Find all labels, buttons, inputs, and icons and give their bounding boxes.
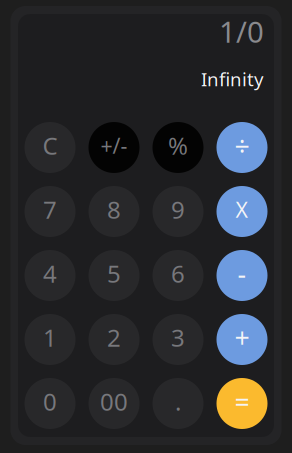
- staticText: 3: [171, 322, 185, 353]
- button[interactable]: Eight: [88, 186, 139, 237]
- button[interactable]: One: [24, 314, 75, 365]
- staticText: -: [237, 256, 246, 291]
- staticText: X: [235, 195, 248, 224]
- staticText: +/-: [100, 131, 127, 160]
- staticText: ÷: [234, 128, 249, 163]
- staticText: 4: [43, 258, 57, 289]
- button[interactable]: Seven: [24, 186, 75, 237]
- button[interactable]: Three: [152, 314, 203, 365]
- staticText: %: [168, 130, 188, 161]
- button[interactable]: Five: [88, 250, 139, 301]
- staticText: 7: [43, 194, 57, 225]
- button[interactable]: Nine: [152, 186, 203, 237]
- staticText: 8: [107, 194, 121, 225]
- button[interactable]: Zero: [24, 378, 75, 429]
- button[interactable]: Plus: [216, 314, 267, 365]
- button[interactable]: Percent: [152, 122, 203, 173]
- staticText: Infinity: [201, 67, 264, 91]
- button[interactable]: Toggle sign: [88, 122, 139, 173]
- button[interactable]: Equals: [216, 378, 267, 429]
- button[interactable]: Decimal point: [152, 378, 203, 429]
- button[interactable]: Double zero: [88, 378, 139, 429]
- button[interactable]: Divide: [216, 122, 267, 173]
- button[interactable]: Multiply: [216, 186, 267, 237]
- staticText: 6: [171, 258, 185, 289]
- staticText: 5: [107, 258, 121, 289]
- staticText: 2: [107, 322, 121, 353]
- staticText: 9: [171, 194, 185, 225]
- staticText: =: [234, 384, 249, 419]
- staticText: 0: [43, 386, 57, 417]
- staticText: 1: [43, 322, 57, 353]
- button[interactable]: Six: [152, 250, 203, 301]
- button[interactable]: Clear: [24, 122, 75, 173]
- staticText: C: [42, 130, 57, 161]
- button[interactable]: Two: [88, 314, 139, 365]
- staticText: 1/0: [219, 12, 264, 51]
- button[interactable]: Minus: [216, 250, 267, 301]
- staticText: 00: [100, 386, 128, 417]
- button[interactable]: Four: [24, 250, 75, 301]
- staticText: .: [175, 386, 181, 417]
- staticText: +: [234, 320, 249, 355]
